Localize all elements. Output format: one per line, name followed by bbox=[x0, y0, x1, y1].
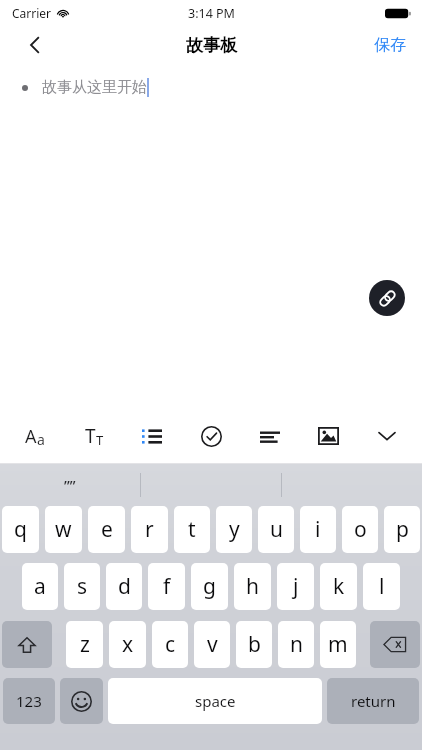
button[interactable]: o bbox=[342, 506, 378, 553]
staticText: space bbox=[195, 691, 236, 711]
button[interactable]: q bbox=[2, 506, 39, 553]
button[interactable]: x bbox=[109, 621, 146, 668]
button[interactable]: a bbox=[22, 563, 58, 610]
staticText: j bbox=[293, 572, 299, 601]
staticText: v bbox=[207, 630, 218, 659]
staticText: 保存 bbox=[374, 35, 406, 55]
button[interactable]: 保存 bbox=[366, 29, 414, 61]
staticText: 故事板 bbox=[186, 35, 237, 56]
staticText: ”” bbox=[64, 475, 76, 495]
button[interactable]: b bbox=[236, 621, 272, 668]
staticText: z bbox=[80, 630, 90, 659]
button[interactable]: h bbox=[234, 563, 271, 610]
staticText: n bbox=[290, 630, 303, 659]
staticText: return bbox=[351, 691, 396, 711]
button[interactable]: Font size bbox=[14, 414, 56, 458]
button[interactable]: Emoji bbox=[60, 678, 103, 724]
button[interactable]: j bbox=[277, 563, 314, 610]
button[interactable]: Shift bbox=[2, 621, 52, 668]
button[interactable]: Backspace bbox=[370, 621, 420, 668]
button[interactable]: n bbox=[278, 621, 314, 668]
button[interactable]: z bbox=[66, 621, 103, 668]
button[interactable]: m bbox=[320, 621, 356, 668]
button[interactable]: u bbox=[258, 506, 294, 553]
button[interactable]: Back bbox=[14, 26, 56, 64]
button[interactable]: Insert image bbox=[307, 414, 349, 458]
staticText: k bbox=[333, 572, 345, 601]
staticText: q bbox=[14, 515, 27, 544]
staticText: d bbox=[118, 572, 131, 601]
button[interactable]: v bbox=[194, 621, 230, 668]
staticText: b bbox=[248, 630, 261, 659]
staticText: y bbox=[229, 515, 240, 544]
button[interactable]: k bbox=[320, 563, 357, 610]
button[interactable]: t bbox=[174, 506, 210, 553]
staticText: T bbox=[96, 431, 104, 449]
staticText: p bbox=[396, 515, 409, 544]
staticText: f bbox=[163, 572, 171, 601]
staticText: c bbox=[165, 630, 176, 659]
button[interactable]: i bbox=[300, 506, 336, 553]
staticText: T bbox=[85, 423, 96, 449]
staticText: u bbox=[270, 515, 283, 544]
staticText: a bbox=[37, 430, 45, 449]
button[interactable]: More options bbox=[366, 414, 408, 458]
button[interactable]: p bbox=[384, 506, 420, 553]
button[interactable]: g bbox=[191, 563, 228, 610]
button[interactable]: s bbox=[64, 563, 100, 610]
staticText: t bbox=[188, 515, 196, 544]
button[interactable]: return bbox=[327, 678, 419, 724]
button[interactable]: w bbox=[45, 506, 82, 553]
button[interactable]: Bulleted list bbox=[131, 414, 173, 458]
button[interactable]: r bbox=[131, 506, 168, 553]
button[interactable]: Text style bbox=[73, 414, 115, 458]
staticText: o bbox=[354, 515, 367, 544]
staticText: Carrier bbox=[12, 5, 52, 21]
staticText: w bbox=[55, 515, 72, 544]
staticText: 123 bbox=[16, 691, 42, 711]
button[interactable]: Align left bbox=[249, 414, 291, 458]
button[interactable]: d bbox=[106, 563, 142, 610]
staticText: h bbox=[246, 572, 259, 601]
staticText: 故事从这里开始 bbox=[42, 78, 147, 97]
staticText: s bbox=[77, 572, 88, 601]
staticText: g bbox=[203, 572, 216, 601]
staticText: a bbox=[34, 572, 46, 601]
button[interactable]: f bbox=[148, 563, 185, 610]
staticText: 3:14 PM bbox=[188, 5, 235, 22]
staticText: x bbox=[122, 630, 134, 659]
button[interactable]: e bbox=[88, 506, 125, 553]
staticText: A bbox=[25, 424, 37, 449]
button[interactable]: space bbox=[108, 678, 322, 724]
staticText: i bbox=[315, 515, 321, 544]
button[interactable]: c bbox=[152, 621, 188, 668]
staticText: e bbox=[101, 515, 113, 544]
button[interactable]: y bbox=[216, 506, 252, 553]
staticText: l bbox=[379, 572, 385, 601]
button[interactable]: l bbox=[363, 563, 400, 610]
button[interactable]: Checklist bbox=[190, 414, 232, 458]
staticText: r bbox=[145, 515, 154, 544]
button[interactable]: 123 bbox=[3, 678, 55, 724]
staticText: m bbox=[328, 630, 348, 659]
button[interactable]: Insert link bbox=[369, 280, 405, 316]
